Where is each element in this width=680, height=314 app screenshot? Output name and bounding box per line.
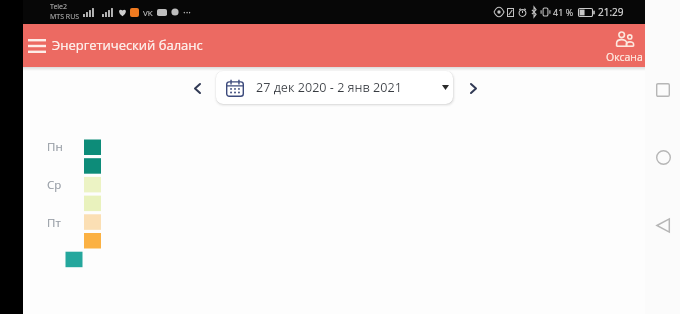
staticText: 27 дек 2020 - 2 янв 2021 <box>256 79 402 96</box>
staticText: 41 % <box>553 6 574 18</box>
staticText: Tele2 <box>50 2 68 12</box>
button[interactable]: Profile Оксана <box>601 30 648 66</box>
staticText: Пт <box>47 215 61 231</box>
button[interactable]: Home <box>648 142 678 172</box>
staticText: VK <box>143 7 153 18</box>
button[interactable]: Next week <box>456 75 482 101</box>
button[interactable]: 27 дек 2020 - 2 янв 2021 <box>216 71 453 104</box>
button[interactable]: Back <box>648 210 678 240</box>
staticText: ··· <box>183 5 191 19</box>
button[interactable]: Open navigation menu <box>23 29 51 62</box>
staticText: Ср <box>47 177 62 193</box>
staticText: Энергетический баланс <box>52 36 203 54</box>
staticText: 21:29 <box>598 5 624 19</box>
staticText: Оксана <box>606 50 643 64</box>
staticText: Пн <box>47 139 63 155</box>
button[interactable]: Previous week <box>187 75 213 101</box>
staticText: MTS RUS <box>50 12 80 22</box>
button[interactable]: Recent apps <box>648 75 678 105</box>
